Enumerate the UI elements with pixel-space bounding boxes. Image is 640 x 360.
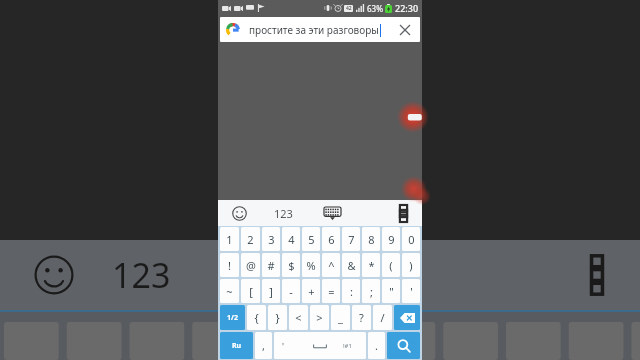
button[interactable]: Ru	[220, 332, 253, 359]
button[interactable]: 5	[302, 227, 320, 251]
staticText: 7	[348, 232, 355, 247]
staticText: 22:30	[395, 2, 419, 14]
button[interactable]: _	[331, 305, 350, 330]
button[interactable]: &	[342, 253, 360, 277]
button[interactable]: @	[241, 253, 260, 277]
staticText: простите за эти разговоры	[249, 23, 379, 37]
button[interactable]: (	[382, 253, 400, 277]
button[interactable]: !	[220, 253, 239, 277]
button[interactable]: 2	[241, 227, 260, 251]
button[interactable]: 9	[382, 227, 400, 251]
staticText: ,	[262, 338, 265, 353]
staticText: ?	[359, 310, 364, 325]
button[interactable]: -	[282, 279, 300, 303]
staticText: ~	[226, 284, 233, 299]
staticText: _	[338, 310, 343, 325]
button[interactable]: #	[262, 253, 280, 277]
button[interactable]: Search	[387, 332, 420, 359]
staticText: '	[282, 340, 285, 352]
button[interactable]: ]	[262, 279, 280, 303]
button[interactable]: Space	[274, 332, 366, 359]
button[interactable]: Keyboard layout	[320, 203, 344, 223]
button[interactable]: <	[289, 305, 308, 330]
button[interactable]: /	[373, 305, 392, 330]
staticText: :	[350, 284, 353, 299]
staticText: )	[409, 258, 413, 273]
button[interactable]: }	[268, 305, 287, 330]
button[interactable]: 8	[362, 227, 380, 251]
button[interactable]: ~	[220, 279, 239, 303]
staticText: >	[316, 310, 323, 325]
staticText: ^	[328, 258, 335, 273]
button[interactable]: 0	[402, 227, 420, 251]
button[interactable]: 6	[322, 227, 340, 251]
staticText: %	[306, 258, 316, 273]
staticText: 123	[274, 206, 293, 221]
button[interactable]: 7	[342, 227, 360, 251]
button[interactable]: More options	[392, 201, 414, 225]
staticText: 63%	[367, 3, 383, 14]
staticText: /	[380, 310, 385, 325]
staticText: @	[246, 258, 256, 273]
staticText: !	[228, 258, 231, 273]
staticText: 42	[346, 5, 352, 12]
button[interactable]: 1/2	[220, 305, 245, 330]
button[interactable]: +	[302, 279, 320, 303]
staticText: }	[275, 310, 280, 325]
staticText: '	[410, 284, 413, 299]
button[interactable]: Clear	[396, 21, 414, 39]
staticText: #	[267, 258, 275, 273]
staticText: 8	[368, 232, 375, 247]
staticText: ;	[370, 284, 373, 299]
button[interactable]: $	[282, 253, 300, 277]
button[interactable]: "	[382, 279, 400, 303]
staticText: !#1	[343, 342, 352, 350]
staticText: "	[389, 284, 394, 299]
staticText: Ru	[232, 341, 242, 351]
button[interactable]: Backspace	[394, 305, 420, 330]
button[interactable]: %	[302, 253, 320, 277]
staticText: 123	[112, 252, 171, 298]
staticText: -	[289, 284, 293, 299]
button[interactable]: .	[368, 332, 385, 359]
button[interactable]: 1	[220, 227, 239, 251]
button[interactable]: 4	[282, 227, 300, 251]
button[interactable]: ^	[322, 253, 340, 277]
button[interactable]: ,	[255, 332, 272, 359]
staticText: [	[249, 284, 253, 299]
staticText: 9	[388, 232, 395, 247]
button[interactable]: 123	[271, 204, 296, 223]
button[interactable]: {	[247, 305, 266, 330]
staticText: =	[328, 284, 335, 299]
staticText: 5	[308, 232, 315, 247]
staticText: 6	[328, 232, 335, 247]
staticText: +	[308, 284, 315, 299]
staticText: 2	[247, 232, 254, 247]
button[interactable]: '	[402, 279, 420, 303]
button[interactable]: ?	[352, 305, 371, 330]
staticText: 1/2	[227, 313, 238, 323]
staticText: *	[368, 258, 375, 273]
staticText: 3	[268, 232, 275, 247]
button[interactable]: 3	[262, 227, 280, 251]
button[interactable]: >	[310, 305, 329, 330]
staticText: {	[254, 310, 259, 325]
staticText: <	[295, 310, 302, 325]
staticText: 4	[288, 232, 295, 247]
button[interactable]: )	[402, 253, 420, 277]
staticText: ]	[269, 284, 273, 299]
button[interactable]: Emoji	[229, 203, 249, 223]
button[interactable]: ;	[362, 279, 380, 303]
button[interactable]: [	[241, 279, 260, 303]
button[interactable]: :	[342, 279, 360, 303]
button[interactable]: простите за эти разговоры	[220, 17, 420, 42]
staticText: &	[347, 258, 356, 273]
staticText: (	[389, 258, 393, 273]
staticText: 0	[408, 232, 415, 247]
staticText: $	[288, 258, 295, 273]
staticText: 1	[226, 232, 233, 247]
button[interactable]: *	[362, 253, 380, 277]
staticText: .	[375, 338, 378, 353]
button[interactable]: =	[322, 279, 340, 303]
